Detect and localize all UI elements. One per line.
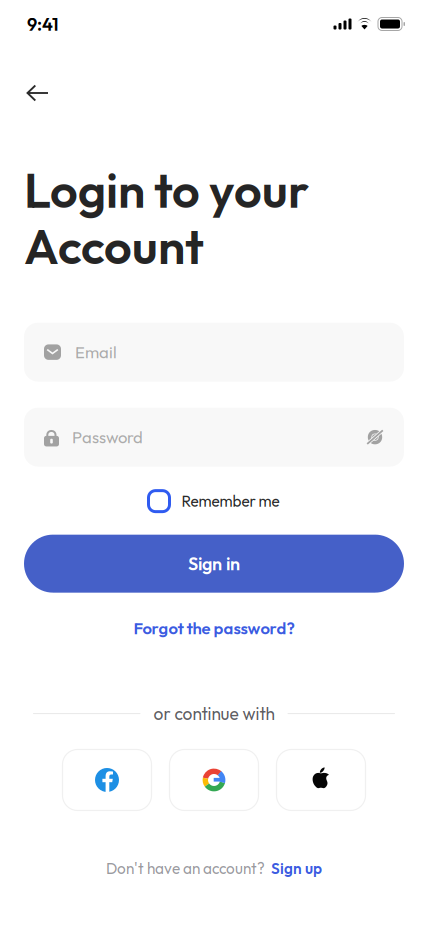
staticText: Remember me — [181, 491, 279, 511]
staticText: Email — [75, 342, 117, 363]
button[interactable]: Continue with Apple — [276, 749, 365, 810]
staticText: Sign up — [271, 859, 322, 878]
staticText: Sign in — [188, 552, 240, 575]
button[interactable]: Show password — [366, 429, 384, 445]
button[interactable]: Forgot the password? — [133, 608, 294, 649]
staticText: Don't have an account? — [106, 859, 265, 878]
staticText: 9:41 — [27, 13, 59, 35]
staticText: Password — [72, 427, 143, 448]
button[interactable]: Sign up — [271, 859, 322, 878]
button[interactable]: Continue with Facebook — [62, 749, 151, 810]
button[interactable]: Back — [16, 71, 60, 115]
staticText: Forgot the password? — [133, 618, 294, 639]
button[interactable]: Continue with Google — [169, 749, 258, 810]
button[interactable]: Sign in — [24, 535, 404, 593]
staticText: Login to your — [24, 159, 309, 220]
staticText: or continue with — [153, 703, 274, 724]
staticText: Account — [24, 215, 204, 277]
button[interactable]: Remember me — [148, 491, 279, 512]
